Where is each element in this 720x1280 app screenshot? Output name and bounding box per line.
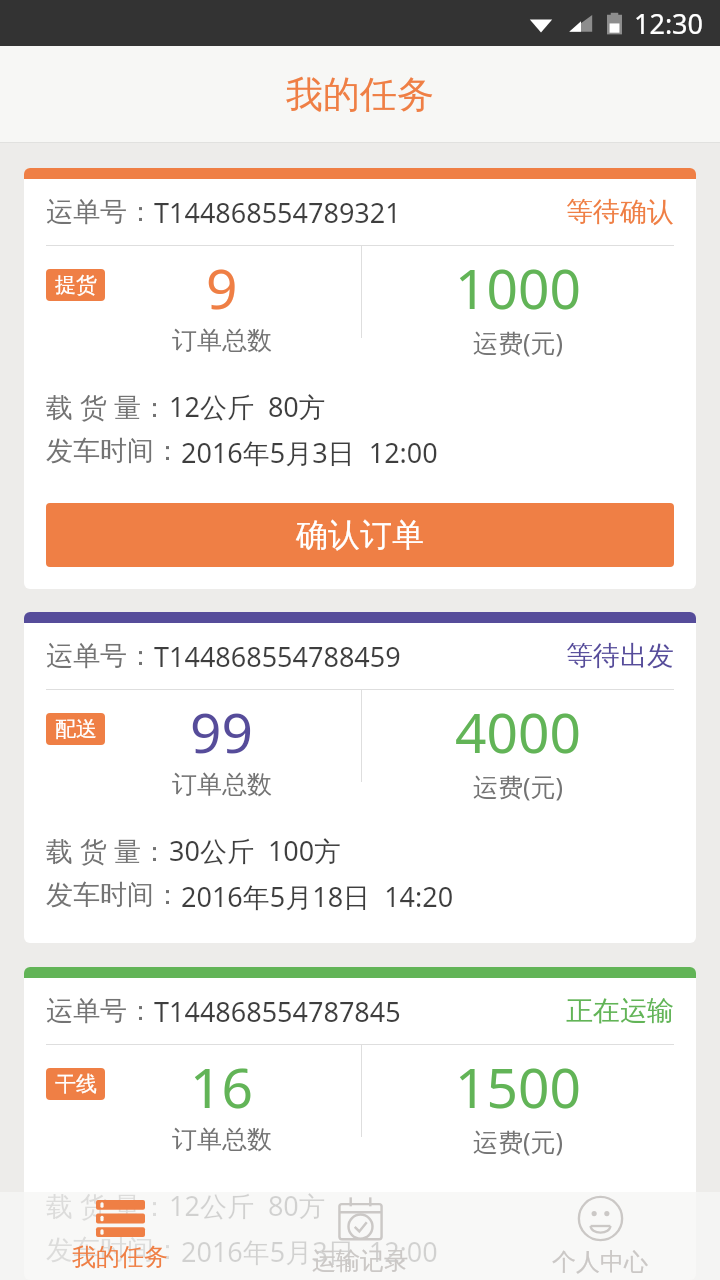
staticText: 发车时间：	[46, 878, 181, 912]
staticText: 订单总数	[172, 325, 272, 356]
staticText: 个人中心	[552, 1247, 648, 1277]
button[interactable]: 运单号：	[24, 612, 696, 943]
button[interactable]: 确认订单	[46, 503, 674, 567]
staticText: 运单号：	[46, 994, 154, 1028]
staticText: 订单总数	[172, 769, 272, 800]
staticText: 运费(元)	[473, 769, 564, 802]
staticText: 发车时间：	[46, 1233, 181, 1267]
staticText: 运单号：	[46, 639, 154, 673]
staticText: 我的任务	[286, 71, 434, 118]
staticText: 等待出发	[566, 639, 674, 673]
staticText: 1500	[455, 1049, 581, 1124]
staticText: 30公斤 100方	[169, 832, 342, 869]
staticText: 2016年5月3日 12:00	[181, 1233, 438, 1270]
staticText: 提货	[55, 272, 97, 298]
button[interactable]: 运单号：	[24, 168, 696, 589]
staticText: 12公斤 80方	[169, 1187, 326, 1224]
staticText: 9	[206, 250, 238, 325]
staticText: 2016年5月3日 12:00	[181, 434, 438, 471]
staticText: 1000	[455, 250, 581, 325]
button[interactable]: 运输记录	[240, 1192, 480, 1280]
staticText: 2016年5月18日 14:20	[181, 878, 454, 915]
staticText: 载 货 量：	[46, 388, 169, 425]
staticText: 12:30	[634, 5, 704, 42]
staticText: 99	[190, 694, 253, 769]
staticText: 12公斤 80方	[169, 388, 326, 425]
staticText: T144868554787845	[154, 993, 401, 1030]
button[interactable]: 我的任务	[0, 1192, 240, 1280]
button[interactable]: 个人中心	[480, 1192, 720, 1280]
staticText: T144868554789321	[154, 194, 401, 231]
staticText: 载 货 量：	[46, 832, 169, 869]
staticText: 运输记录	[312, 1246, 408, 1276]
staticText: 运费(元)	[473, 325, 564, 358]
staticText: 配送	[55, 716, 97, 742]
staticText: 确认订单	[296, 515, 424, 555]
staticText: 4000	[455, 694, 581, 769]
staticText: 运单号：	[46, 195, 154, 229]
staticText: 载 货 量：	[46, 1187, 169, 1224]
staticText: 等待确认	[566, 195, 674, 229]
staticText: 我的任务	[72, 1242, 168, 1272]
staticText: 16	[190, 1049, 253, 1124]
staticText: T144868554788459	[154, 638, 401, 675]
staticText: 干线	[55, 1071, 97, 1097]
staticText: 发车时间：	[46, 434, 181, 468]
staticText: 运费(元)	[473, 1124, 564, 1157]
button[interactable]: 运单号：	[24, 967, 696, 1280]
staticText: 订单总数	[172, 1124, 272, 1155]
staticText: 正在运输	[566, 994, 674, 1028]
